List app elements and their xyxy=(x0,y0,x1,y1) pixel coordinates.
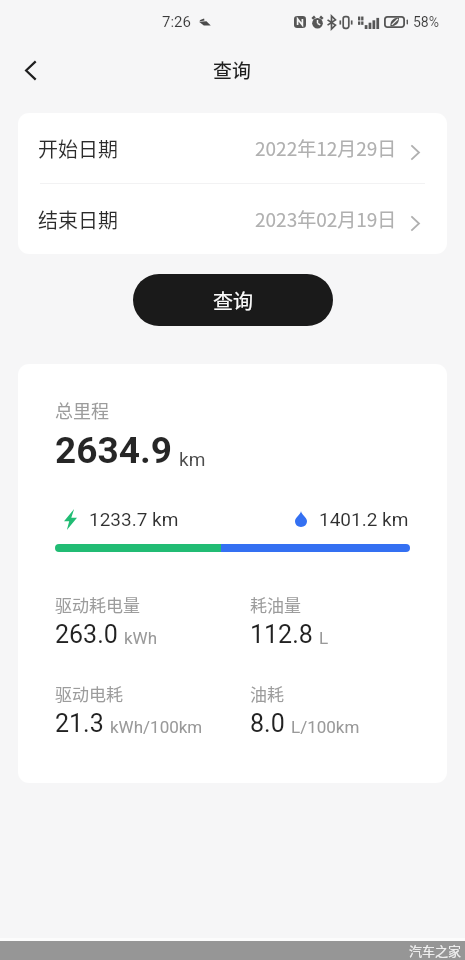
staticText: 查询 xyxy=(213,286,253,315)
staticText: 1401.2 km xyxy=(319,508,409,530)
staticText: 7:26 xyxy=(162,13,191,31)
staticText: 2634.9 xyxy=(55,429,172,472)
button[interactable]: 结束日期 xyxy=(18,184,447,254)
staticText: 结束日期 xyxy=(38,205,118,234)
staticText: 驱动电耗 xyxy=(55,681,123,706)
button[interactable]: Back xyxy=(8,48,52,92)
staticText: 查询 xyxy=(213,56,252,84)
staticText: 总里程 xyxy=(55,397,109,423)
button[interactable]: 开始日期 xyxy=(18,113,447,183)
staticText: L xyxy=(319,628,329,648)
staticText: km xyxy=(179,448,206,470)
button[interactable]: 查询 xyxy=(133,274,333,326)
staticText: 耗油量 xyxy=(250,592,301,617)
staticText: 112.8 xyxy=(250,620,313,649)
staticText: L/100km xyxy=(291,717,360,737)
staticText: kWh xyxy=(124,628,158,648)
staticText: 开始日期 xyxy=(38,134,118,163)
staticText: 21.3 xyxy=(55,709,104,738)
staticText: 2022年12月29日 xyxy=(255,134,397,162)
staticText: 263.0 xyxy=(55,620,118,649)
staticText: kWh/100km xyxy=(110,717,203,737)
staticText: 驱动耗电量 xyxy=(55,592,140,617)
staticText: 油耗 xyxy=(250,681,284,706)
staticText: 汽车之家 xyxy=(409,941,462,960)
staticText: 1233.7 km xyxy=(89,508,179,530)
staticText: 58% xyxy=(413,14,439,30)
staticText: 8.0 xyxy=(250,709,285,738)
staticText: 2023年02月19日 xyxy=(255,205,397,233)
